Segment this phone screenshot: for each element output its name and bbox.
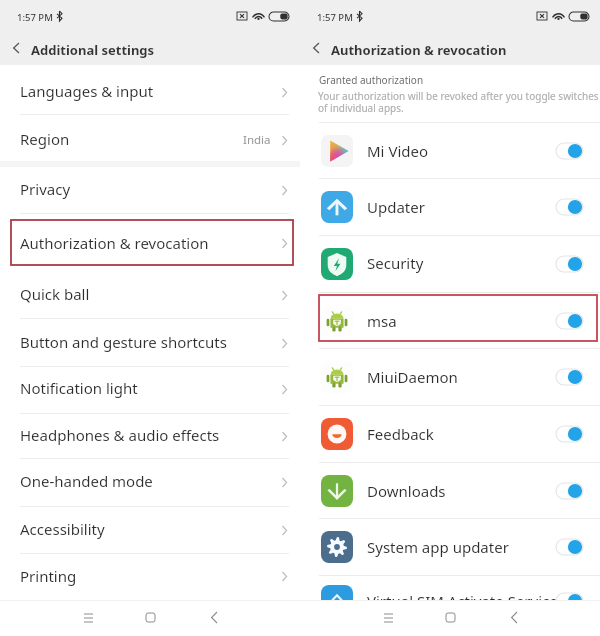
staticText: Languages & input <box>20 81 154 101</box>
button[interactable]: Notification light <box>0 367 300 413</box>
staticText: Accessibility <box>20 519 105 539</box>
button[interactable]: System app updater <box>300 519 600 575</box>
staticText: Mi Video <box>367 141 429 161</box>
button[interactable]: Recent apps <box>76 605 101 630</box>
staticText: Virtual SIM Activate Service <box>367 591 558 611</box>
button[interactable]: Toggle Virtual SIM Activate Service <box>556 593 583 609</box>
button[interactable]: msa <box>300 293 600 349</box>
staticText: Notification light <box>20 378 138 398</box>
button[interactable]: MiuiDaemon <box>300 349 600 405</box>
button[interactable]: Downloads <box>300 463 600 519</box>
button[interactable]: Toggle MiuiDaemon <box>556 369 583 385</box>
staticText: Quick ball <box>20 284 90 304</box>
button[interactable]: Authorization & revocation <box>0 214 300 266</box>
button[interactable]: Navigate up <box>303 35 329 61</box>
button[interactable]: Toggle msa <box>556 313 583 329</box>
staticText: Downloads <box>367 481 446 501</box>
staticText: Button and gesture shortcuts <box>20 332 227 352</box>
staticText: Privacy <box>20 179 71 199</box>
staticText: Authorization & revocation <box>20 233 209 253</box>
button[interactable]: Mi Video <box>300 123 600 178</box>
button[interactable]: Home <box>438 605 463 630</box>
button[interactable]: Region <box>0 115 300 161</box>
button[interactable]: One-handed mode <box>0 459 300 506</box>
button[interactable]: Button and gesture shortcuts <box>0 319 300 366</box>
button[interactable]: Toggle Updater <box>556 199 583 215</box>
staticText: Region <box>20 129 70 149</box>
button[interactable]: Virtual SIM Activate Service <box>300 576 600 626</box>
button[interactable]: Quick ball <box>0 266 300 318</box>
button[interactable]: Back <box>201 605 226 630</box>
button[interactable]: Recent apps <box>376 605 401 630</box>
button[interactable]: Printing <box>0 554 300 599</box>
staticText: Additional settings <box>31 41 155 59</box>
staticText: One-handed mode <box>20 471 153 491</box>
staticText: Updater <box>367 197 425 217</box>
button[interactable]: Toggle System app updater <box>556 539 583 555</box>
button[interactable]: Toggle Security <box>556 256 583 272</box>
staticText: System app updater <box>367 537 509 557</box>
staticText: MiuiDaemon <box>367 367 458 387</box>
staticText: Granted authorization <box>319 73 424 87</box>
staticText: Your authorization will be revoked after… <box>318 89 600 115</box>
staticText: Feedback <box>367 424 434 444</box>
button[interactable]: Navigate up <box>3 35 29 61</box>
staticText: 1:57 PM <box>317 11 353 24</box>
button[interactable]: Security <box>300 236 600 292</box>
button[interactable]: Updater <box>300 179 600 235</box>
button[interactable]: Toggle Downloads <box>556 483 583 499</box>
button[interactable]: Accessibility <box>0 507 300 553</box>
button[interactable]: Feedback <box>300 406 600 462</box>
staticText: 1:57 PM <box>17 11 53 24</box>
button[interactable]: Toggle Feedback <box>556 426 583 442</box>
staticText: Security <box>367 253 424 273</box>
button[interactable]: Back <box>501 605 526 630</box>
staticText: msa <box>367 311 397 331</box>
button[interactable]: Privacy <box>0 168 300 213</box>
button[interactable]: Languages & input <box>0 64 300 114</box>
button[interactable]: Home <box>138 605 163 630</box>
staticText: India <box>243 132 271 148</box>
button[interactable]: Headphones & audio effects <box>0 414 300 458</box>
button[interactable]: Toggle Mi Video <box>556 143 583 159</box>
staticText: Authorization & revocation <box>331 41 507 59</box>
staticText: Printing <box>20 566 77 586</box>
staticText: Headphones & audio effects <box>20 425 220 445</box>
